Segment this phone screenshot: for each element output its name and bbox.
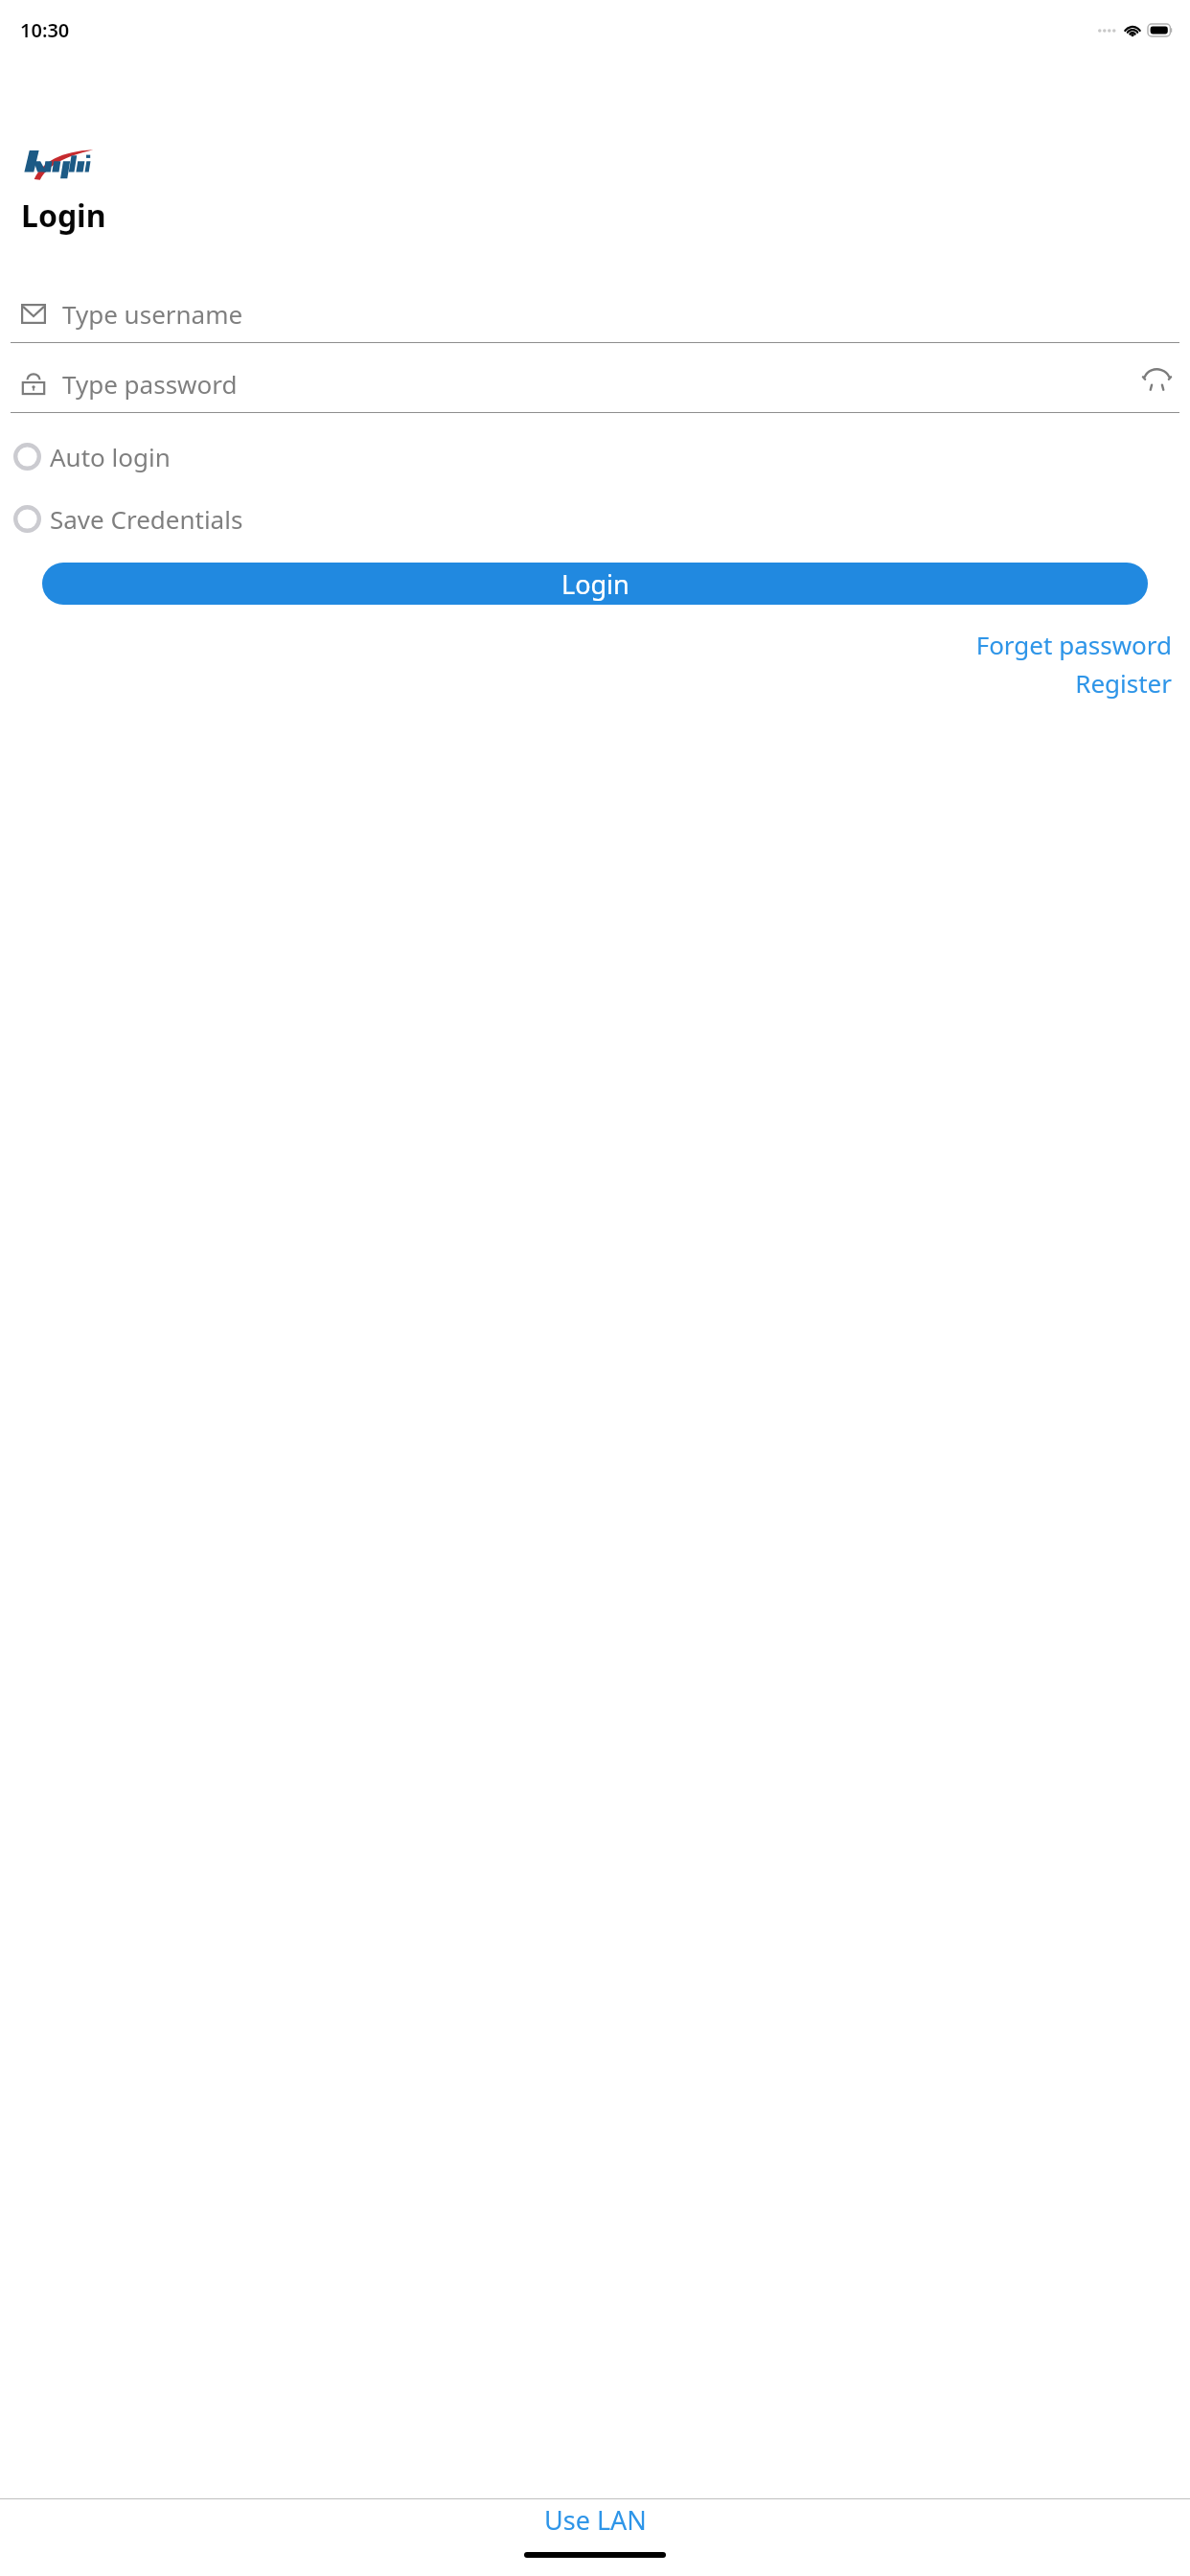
staticText: Login [21,195,106,237]
staticText: Type password [62,367,238,401]
staticText: Forget password [975,628,1172,661]
button[interactable]: Type password [0,355,1190,413]
staticText: 10:30 [20,17,70,43]
staticText: Auto login [50,440,171,473]
button[interactable]: Show password [1140,367,1173,400]
staticText: Login [561,566,629,602]
button[interactable]: Save Credentials [13,491,243,546]
button[interactable]: Login [42,563,1148,605]
button[interactable]: Auto login [13,428,171,484]
staticText: Save Credentials [50,502,243,536]
button[interactable]: Use LAN [0,2499,1190,2552]
button[interactable]: Forget password [975,628,1172,661]
button[interactable]: Register [1075,666,1172,700]
staticText: Use LAN [544,2502,647,2538]
button[interactable]: Type username [0,285,1190,343]
staticText: Register [1075,666,1172,700]
staticText: Type username [62,297,243,331]
